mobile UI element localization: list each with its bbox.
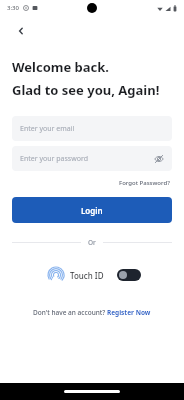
button[interactable]: Don't have an account? Register Now — [29, 305, 155, 320]
staticText: Welcome back. — [12, 58, 110, 76]
button[interactable]: Enter your email — [12, 116, 172, 141]
button[interactable]: Show password — [153, 153, 164, 164]
staticText: Forgot Password? — [119, 179, 170, 187]
staticText: Enter your password — [20, 154, 88, 164]
staticText: Enter your email — [20, 124, 75, 134]
staticText: Or — [88, 238, 96, 247]
button[interactable]: Back — [10, 20, 32, 42]
button[interactable]: Login — [12, 197, 172, 223]
button[interactable]: Forgot Password? — [117, 177, 172, 189]
staticText: Login — [81, 205, 103, 216]
button[interactable]: Touch ID — [44, 264, 108, 286]
staticText: Glad to see you, Again! — [12, 81, 160, 99]
staticText: Touch ID — [70, 270, 104, 281]
staticText: 3:30 — [7, 4, 19, 12]
button[interactable]: Touch ID toggle — [117, 269, 141, 281]
staticText: Don't have an account? Register Now — [33, 308, 151, 317]
button[interactable]: Enter your password — [12, 146, 172, 171]
